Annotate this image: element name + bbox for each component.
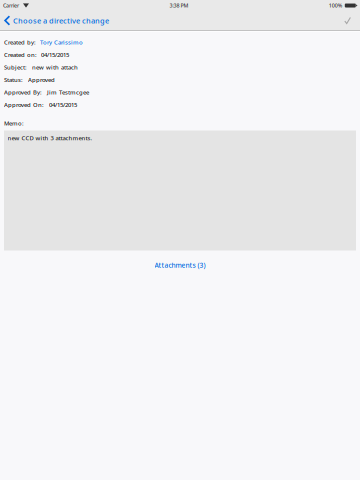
staticText: Status: <box>4 76 23 84</box>
staticText: Approved <box>28 76 55 84</box>
staticText: Approved On: <box>4 101 44 109</box>
staticText: Tory Carissimo <box>40 38 83 46</box>
staticText: Memo: <box>4 119 24 127</box>
staticText: Jim Testmcgee <box>47 88 89 96</box>
staticText: Carrier <box>3 2 19 9</box>
staticText: Subject: <box>4 63 27 71</box>
staticText: Choose a directive change <box>13 15 109 26</box>
staticText: Attachments (3) <box>154 260 205 270</box>
staticText: Created on: <box>4 51 37 59</box>
staticText: Approved By: <box>4 88 42 96</box>
staticText: 04/15/2015 <box>41 51 69 59</box>
staticText: 3:38 PM <box>169 2 188 9</box>
button[interactable]: Attachments (3) <box>4 256 356 274</box>
button[interactable]: Choose a directive change <box>0 11 115 30</box>
staticText: 04/15/2015 <box>49 101 77 109</box>
button[interactable]: Done <box>335 11 360 30</box>
staticText: 100% <box>329 2 343 9</box>
staticText: Created by: <box>4 38 36 46</box>
staticText: new with attach <box>32 63 78 71</box>
staticText: new CCD with 3 attachments. <box>7 134 92 142</box>
